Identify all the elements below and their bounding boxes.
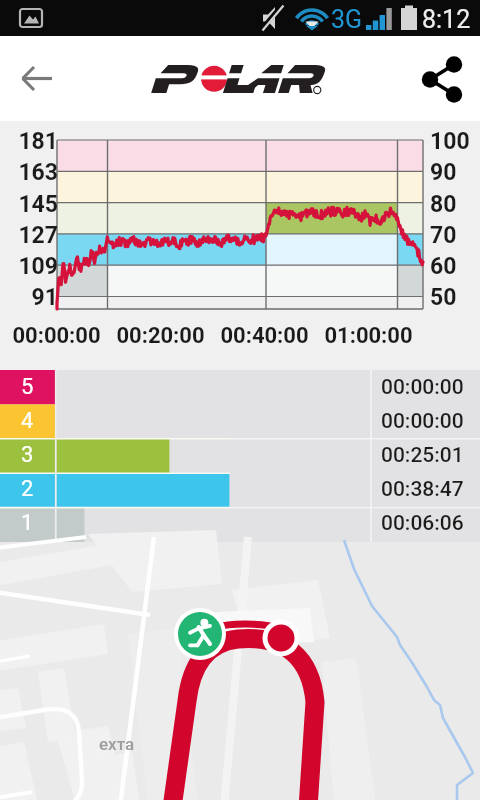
staticText: 2 (21, 476, 34, 502)
staticText: 145 (0, 191, 58, 218)
staticText: 127 (0, 222, 58, 249)
staticText: 60 (430, 253, 480, 280)
staticText: 3 (21, 442, 34, 468)
staticText: 90 (430, 159, 480, 186)
staticText: 00:06:06 (381, 511, 464, 536)
staticText: 00:20:00 (108, 323, 213, 349)
staticText: 91 (0, 284, 58, 311)
staticText: 80 (430, 191, 480, 218)
button[interactable]: 1 (0, 506, 480, 540)
staticText: 109 (0, 253, 58, 280)
staticText: 00:38:47 (381, 477, 464, 502)
staticText: 8:12 (422, 5, 471, 34)
staticText: 50 (430, 284, 480, 311)
button[interactable]: Share (406, 36, 480, 121)
staticText: 1 (21, 510, 34, 536)
staticText: 163 (0, 159, 58, 186)
button[interactable]: Back (0, 36, 74, 121)
staticText: 00:40:00 (212, 323, 317, 349)
button[interactable]: 3 (0, 438, 480, 472)
button[interactable]: 5 (0, 370, 480, 404)
button[interactable]: 2 (0, 472, 480, 506)
staticText: 00:25:01 (381, 443, 464, 468)
staticText: 00:00:00 (381, 375, 464, 400)
staticText: 5 (21, 374, 34, 400)
staticText: 4 (21, 408, 34, 434)
staticText: 100 (430, 128, 480, 155)
staticText: 00:00:00 (4, 323, 109, 349)
button[interactable]: 4 (0, 404, 480, 438)
staticText: 00:00:00 (381, 409, 464, 434)
staticText: 181 (0, 128, 58, 155)
staticText: 3G (331, 5, 363, 34)
staticText: 70 (430, 222, 480, 249)
button[interactable]: Route map (0, 542, 480, 800)
staticText: ехта (99, 734, 135, 754)
staticText: 01:00:00 (316, 323, 421, 349)
